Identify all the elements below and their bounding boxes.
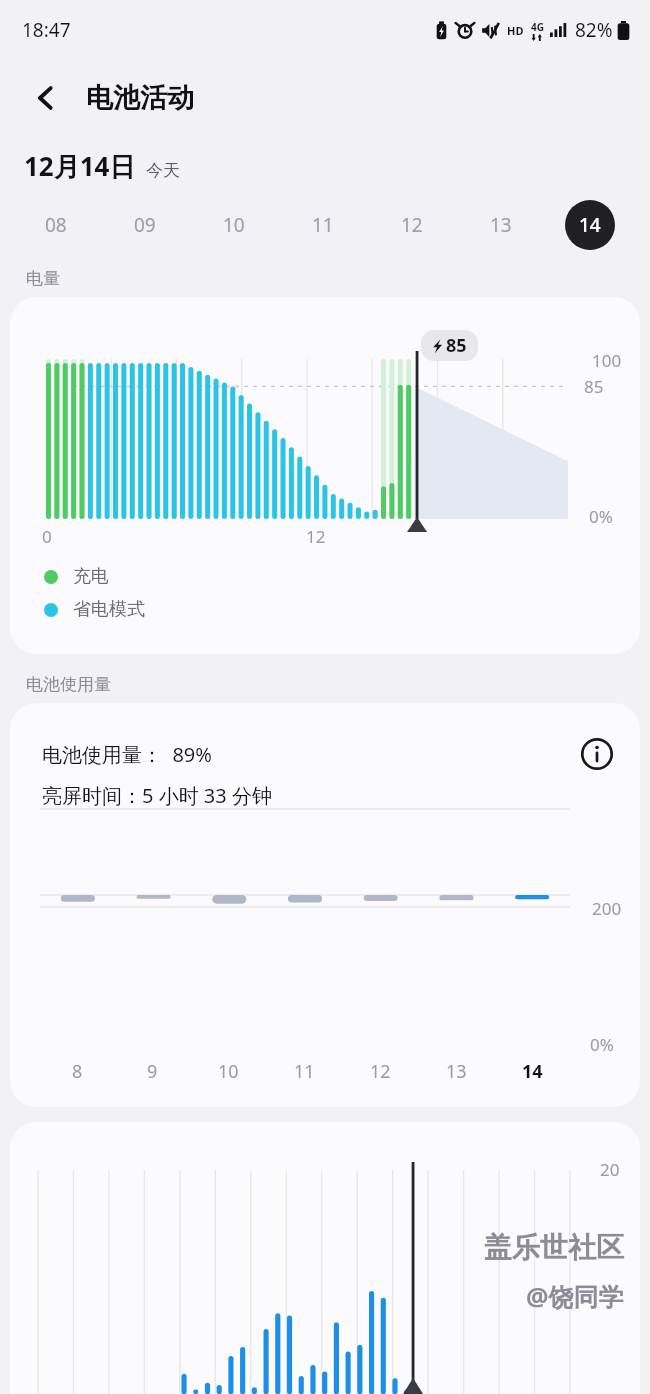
staticText: 100 [592, 349, 622, 372]
staticText: 08 [45, 212, 67, 238]
staticText: 9 [147, 1059, 158, 1084]
staticText: 82% [575, 17, 613, 43]
button[interactable]: 12 [367, 198, 456, 252]
staticText: 14 [579, 212, 601, 238]
staticText: 85 [584, 375, 604, 398]
button[interactable]: 10 [189, 198, 278, 252]
button[interactable]: 08 [12, 198, 100, 252]
staticText: 11 [294, 1059, 315, 1084]
staticText: 09 [134, 212, 156, 238]
staticText: 12 [370, 1059, 391, 1084]
staticText: 电池使用量： 89% [42, 741, 212, 768]
button[interactable]: 电池使用量： 89% [10, 703, 640, 1107]
button[interactable]: 14 [545, 198, 634, 252]
staticText: 盖乐世社区 [484, 1230, 624, 1265]
staticText: 今天 [146, 160, 180, 181]
button[interactable]: Back [18, 70, 74, 126]
staticText: HD [507, 23, 524, 38]
button[interactable]: Info [574, 731, 620, 777]
staticText: 亮屏时间：5 小时 33 分钟 [42, 782, 272, 809]
staticText: 85 [446, 333, 467, 358]
staticText: 0 [42, 525, 52, 548]
staticText: 10 [218, 1059, 239, 1084]
staticText: 0% [589, 505, 613, 528]
staticText: 电池活动 [86, 81, 194, 115]
button[interactable]: 13 [456, 198, 545, 252]
staticText: 200 [592, 897, 622, 920]
staticText: 12 [401, 212, 423, 238]
staticText: 11 [312, 212, 334, 238]
staticText: 12 [306, 525, 326, 548]
button[interactable]: 100 [10, 297, 640, 654]
staticText: 充电 [73, 565, 109, 588]
button[interactable]: 09 [100, 198, 189, 252]
staticText: 0% [590, 1033, 614, 1056]
button[interactable]: 20 [10, 1122, 640, 1394]
staticText: 省电模式 [73, 598, 145, 621]
staticText: 13 [490, 212, 512, 238]
staticText: 18:47 [22, 17, 71, 43]
staticText: 8 [72, 1059, 83, 1084]
staticText: 13 [446, 1059, 467, 1084]
staticText: 4G [531, 20, 544, 34]
staticText: @饶同学 [526, 1279, 624, 1313]
staticText: 14 [522, 1059, 543, 1084]
staticText: 12月14日 [24, 148, 136, 184]
staticText: 电池使用量 [26, 674, 111, 695]
staticText: 10 [223, 212, 245, 238]
staticText: 电量 [26, 268, 60, 289]
button[interactable]: 11 [278, 198, 367, 252]
staticText: 20 [600, 1158, 620, 1181]
